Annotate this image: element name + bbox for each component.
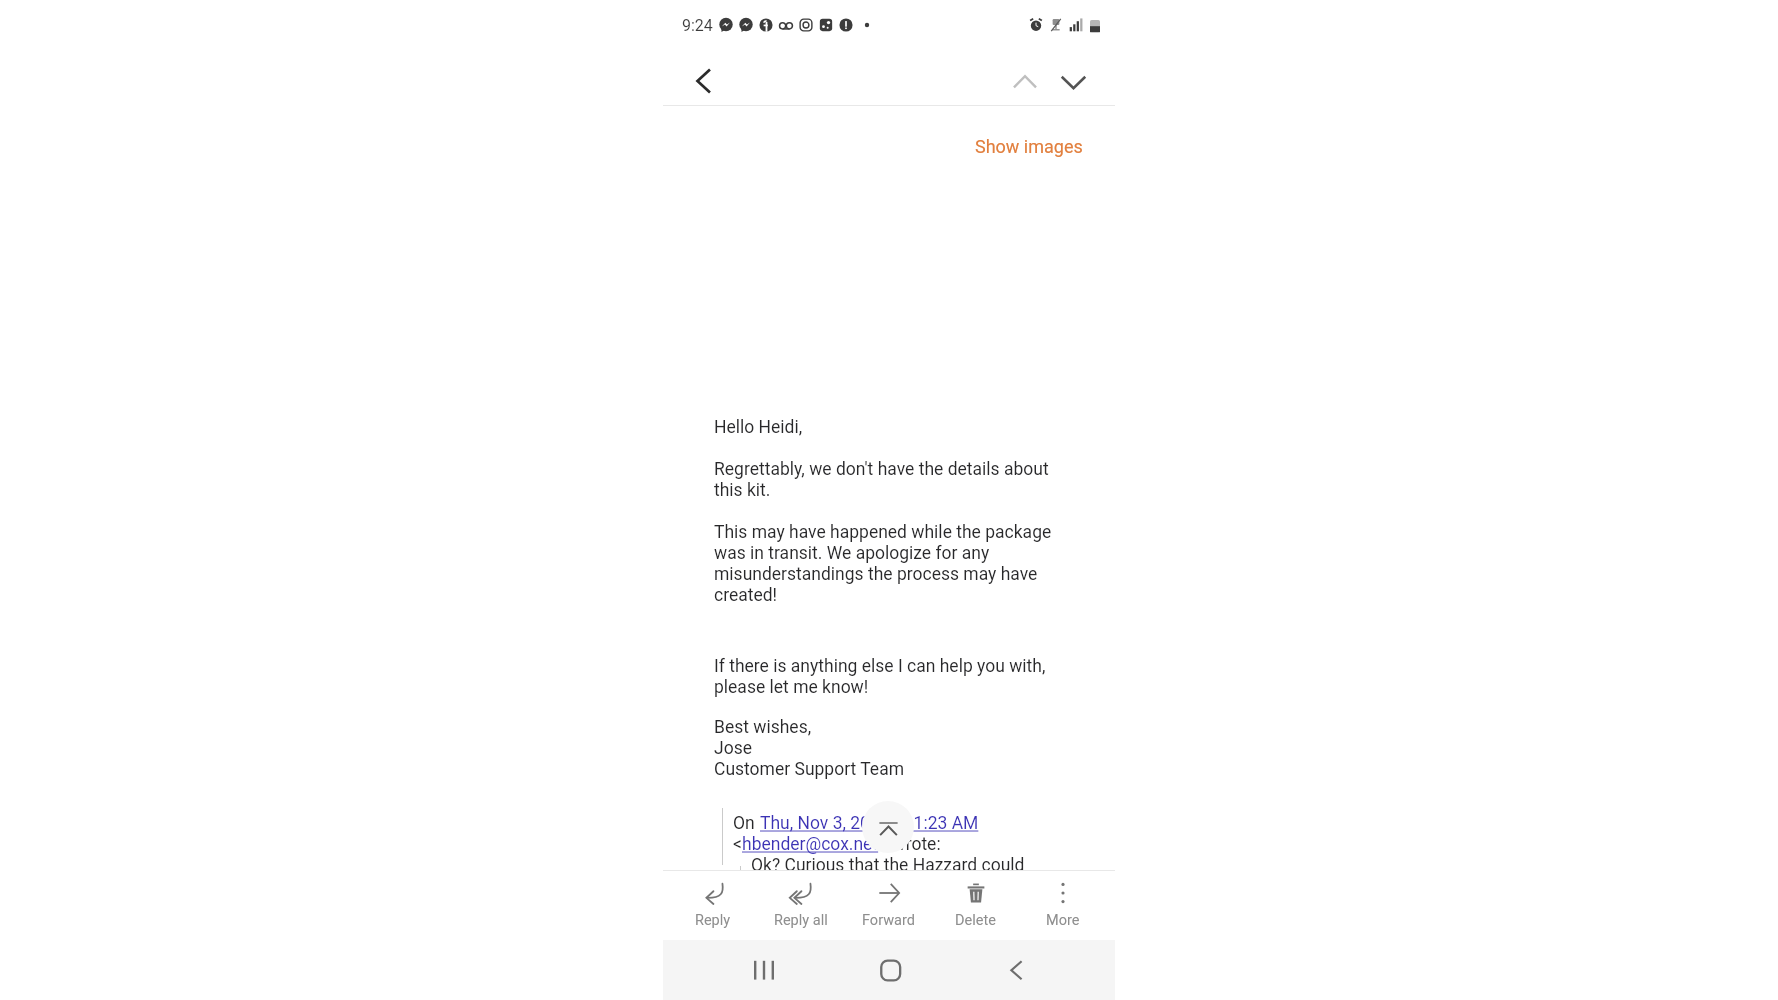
staticText: Regrettably, we don't have the details a…: [714, 459, 1049, 501]
staticText: Forward: [862, 912, 915, 929]
staticText: 9:24: [682, 16, 713, 35]
button[interactable]: Forward: [845, 871, 932, 940]
button[interactable]: Show images: [971, 132, 1087, 161]
staticText: If there is anything else I can help you…: [714, 656, 1046, 698]
staticText: Ok? Curious that the Hazzard could: [751, 855, 1025, 870]
button[interactable]: Recent apps: [701, 940, 827, 1000]
staticText: Show images: [975, 136, 1083, 157]
button[interactable]: Next message: [1053, 62, 1093, 102]
staticText: hbender@cox.net: [742, 834, 879, 855]
staticText: Delete: [955, 912, 996, 929]
staticText: Reply: [695, 912, 731, 929]
button[interactable]: Delete: [932, 871, 1019, 940]
button[interactable]: Reply: [669, 871, 757, 940]
staticText: More: [1046, 912, 1080, 929]
staticText: Thu, Nov 3, 2022 at 1:23 AM: [760, 813, 979, 834]
staticText: On: [733, 813, 760, 834]
button[interactable]: Collapse quoted text: [862, 801, 914, 853]
staticText: <: [733, 834, 742, 855]
staticText: > wrote:: [879, 834, 941, 855]
button[interactable]: Previous message: [1005, 62, 1045, 102]
button[interactable]: Back: [683, 60, 725, 102]
button[interactable]: Reply all: [757, 871, 845, 940]
staticText: Hello Heidi,: [714, 417, 803, 438]
staticText: Reply all: [774, 912, 828, 929]
staticText: This may have happened while the package…: [714, 522, 1052, 606]
staticText: Best wishes, Jose Customer Support Team: [714, 717, 904, 780]
button[interactable]: Back: [953, 940, 1079, 1000]
button[interactable]: More: [1019, 871, 1106, 940]
button[interactable]: Home: [827, 940, 953, 1000]
